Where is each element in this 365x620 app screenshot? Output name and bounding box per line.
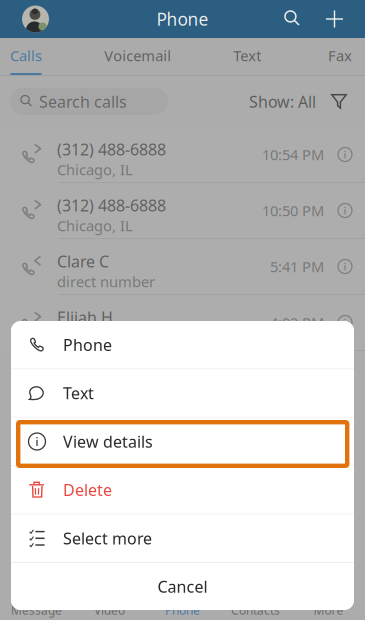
staticText: Calls	[10, 46, 42, 65]
button[interactable]: Video	[73, 598, 146, 620]
button[interactable]: Text	[232, 38, 262, 76]
button[interactable]: Text	[11, 369, 354, 417]
staticText: Video	[94, 602, 125, 618]
button[interactable]: (312) 488-6888	[0, 183, 365, 239]
staticText: View details	[63, 431, 153, 452]
staticText: Select more	[63, 528, 152, 549]
button[interactable]: (312) 488-6888	[0, 127, 365, 183]
staticText: Phone	[156, 7, 208, 30]
staticText: Cancel	[157, 576, 207, 597]
button[interactable]: Profile	[0, 0, 57, 37]
staticText: Voicemail	[104, 46, 171, 65]
button[interactable]: Message	[0, 598, 73, 620]
staticText: Fax	[328, 46, 352, 65]
staticText: More	[313, 602, 343, 618]
staticText: Delete	[63, 479, 112, 500]
button[interactable]: More	[292, 598, 365, 620]
staticText: 10:50 PM	[262, 201, 324, 220]
staticText: Text	[233, 46, 261, 65]
button[interactable]: New call	[316, 0, 365, 37]
button[interactable]: View details	[11, 418, 354, 465]
staticText: Show: All	[249, 91, 316, 112]
button[interactable]: Fax	[327, 38, 353, 76]
button[interactable]: Select more	[11, 515, 354, 562]
button[interactable]: Voicemail	[108, 38, 168, 76]
staticText: direct number	[57, 272, 155, 291]
button[interactable]: Clare C	[0, 239, 365, 295]
staticText: Chicago, IL	[57, 160, 133, 179]
staticText: 5:41 PM	[270, 257, 324, 276]
button[interactable]: Phone	[11, 321, 354, 368]
button[interactable]: Search calls	[0, 88, 168, 115]
button[interactable]: Elijah H	[0, 295, 365, 351]
staticText: Phone	[165, 602, 200, 618]
button[interactable]: Cancel	[11, 563, 354, 610]
staticText: (312) 488-6888	[57, 139, 166, 160]
button[interactable]: Contacts	[219, 598, 292, 620]
staticText: Phone	[63, 334, 112, 355]
staticText: Elijah H	[57, 307, 113, 328]
staticText: (312) 488-6888	[57, 195, 166, 216]
staticText: Message	[11, 602, 62, 618]
button[interactable]: Filter	[316, 85, 365, 117]
button[interactable]: Phone	[146, 598, 219, 620]
staticText: Chicago, IL	[57, 216, 133, 235]
staticText: Contacts	[231, 602, 280, 618]
button[interactable]: Delete	[11, 466, 354, 514]
staticText: 4:02 PM	[270, 313, 324, 332]
button[interactable]: Calls	[9, 38, 43, 76]
staticText: Text	[63, 382, 94, 404]
staticText: Search calls	[39, 91, 127, 112]
button[interactable]: Search	[278, 1, 316, 37]
staticText: direct number	[57, 328, 155, 347]
staticText: 10:54 PM	[262, 145, 324, 164]
button[interactable]: Show: All	[249, 83, 316, 120]
staticText: Clare C	[57, 251, 109, 272]
